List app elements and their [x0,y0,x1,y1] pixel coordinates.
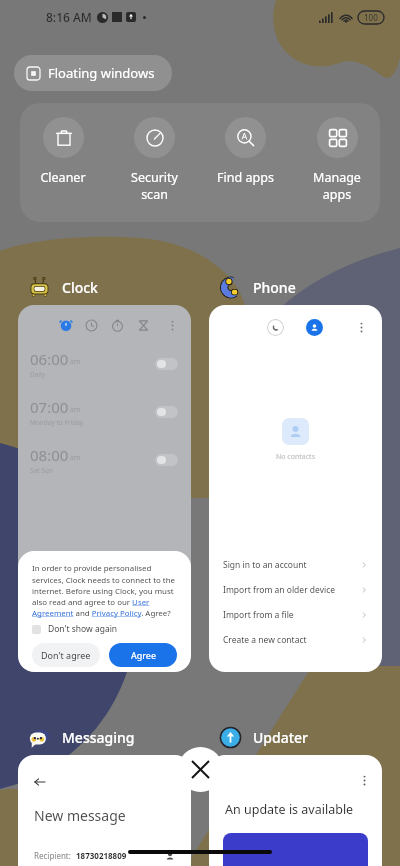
button[interactable]: Recents [209,305,382,672]
staticText: Monday to Friday [30,418,84,427]
staticText: Sign in to an account [223,559,307,571]
button[interactable]: Floating windows [14,55,172,91]
button[interactable]: Close all [178,747,223,792]
button[interactable]: Messaging [18,724,141,750]
staticText: Phone [253,278,296,297]
button[interactable]: Import from a file [209,602,382,627]
staticText: 18730218809 [76,850,127,861]
staticText: Create a new contact [223,634,307,646]
staticText: Messaging [62,728,135,747]
button[interactable]: Timer [137,319,150,332]
button[interactable]: More options [166,319,179,332]
staticText: Recipient: [34,850,71,861]
button[interactable]: Manage apps [293,115,381,202]
button[interactable]: Create a new contact [209,627,382,652]
staticText: 06:00 [30,349,69,369]
staticText: Manage apps [313,169,361,202]
staticText: An update is available [225,801,354,818]
button[interactable]: Don't agree [32,643,100,667]
button[interactable]: Agree [109,643,177,667]
button[interactable]: World clock [85,319,98,332]
staticText: Floating windows [48,64,155,82]
button[interactable]: Back [18,755,191,866]
staticText: New message [34,806,126,825]
button[interactable]: Sign in to an account [209,552,382,577]
staticText: Security scan [131,169,178,202]
button[interactable]: Back [34,776,46,788]
staticText: 100 [364,12,378,23]
button[interactable]: Clock [18,274,104,300]
staticText: Agree [131,649,156,661]
staticText: 08:00 [30,445,69,465]
staticText: am [70,357,81,367]
button[interactable]: Security scan [110,115,198,202]
button[interactable]: Alarm toggle [155,454,178,466]
button[interactable]: Alarm toggle [155,406,178,418]
staticText: Import from a file [223,609,294,621]
staticText: Sat Sun [30,466,53,475]
button[interactable]: 07:00 [18,397,191,427]
staticText: am [70,453,81,463]
button[interactable]: Import from an older device [209,577,382,602]
button[interactable]: Phone [209,274,302,300]
staticText: Find apps [217,169,274,186]
button[interactable]: Alarm [59,318,73,332]
staticText: No contacts [276,452,315,462]
button[interactable]: Recents [267,319,284,336]
button[interactable]: More options [209,755,382,866]
button[interactable]: Updater [209,724,315,750]
staticText: Import from an older device [223,584,336,596]
staticText: 8:16 AM [46,9,92,25]
staticText: In order to provide personalised service… [32,563,177,618]
staticText: Clock [62,278,98,297]
button[interactable]: Alarm [18,305,191,672]
button[interactable]: 08:00 [18,445,191,475]
staticText: Don't agree [41,649,91,661]
button[interactable]: Find apps [201,115,289,186]
staticText: 07:00 [30,397,69,417]
staticText: Daily [30,370,46,379]
button[interactable]: Stopwatch [111,319,124,332]
button[interactable]: 06:00 [18,349,191,379]
staticText: Cleaner [40,169,86,186]
button[interactable]: More options [358,774,371,787]
button[interactable]: Cleaner [19,115,107,186]
button[interactable]: Alarm toggle [155,358,178,370]
staticText: Updater [253,728,309,747]
staticText: am [70,405,81,415]
staticText: Don't show again [48,623,118,635]
